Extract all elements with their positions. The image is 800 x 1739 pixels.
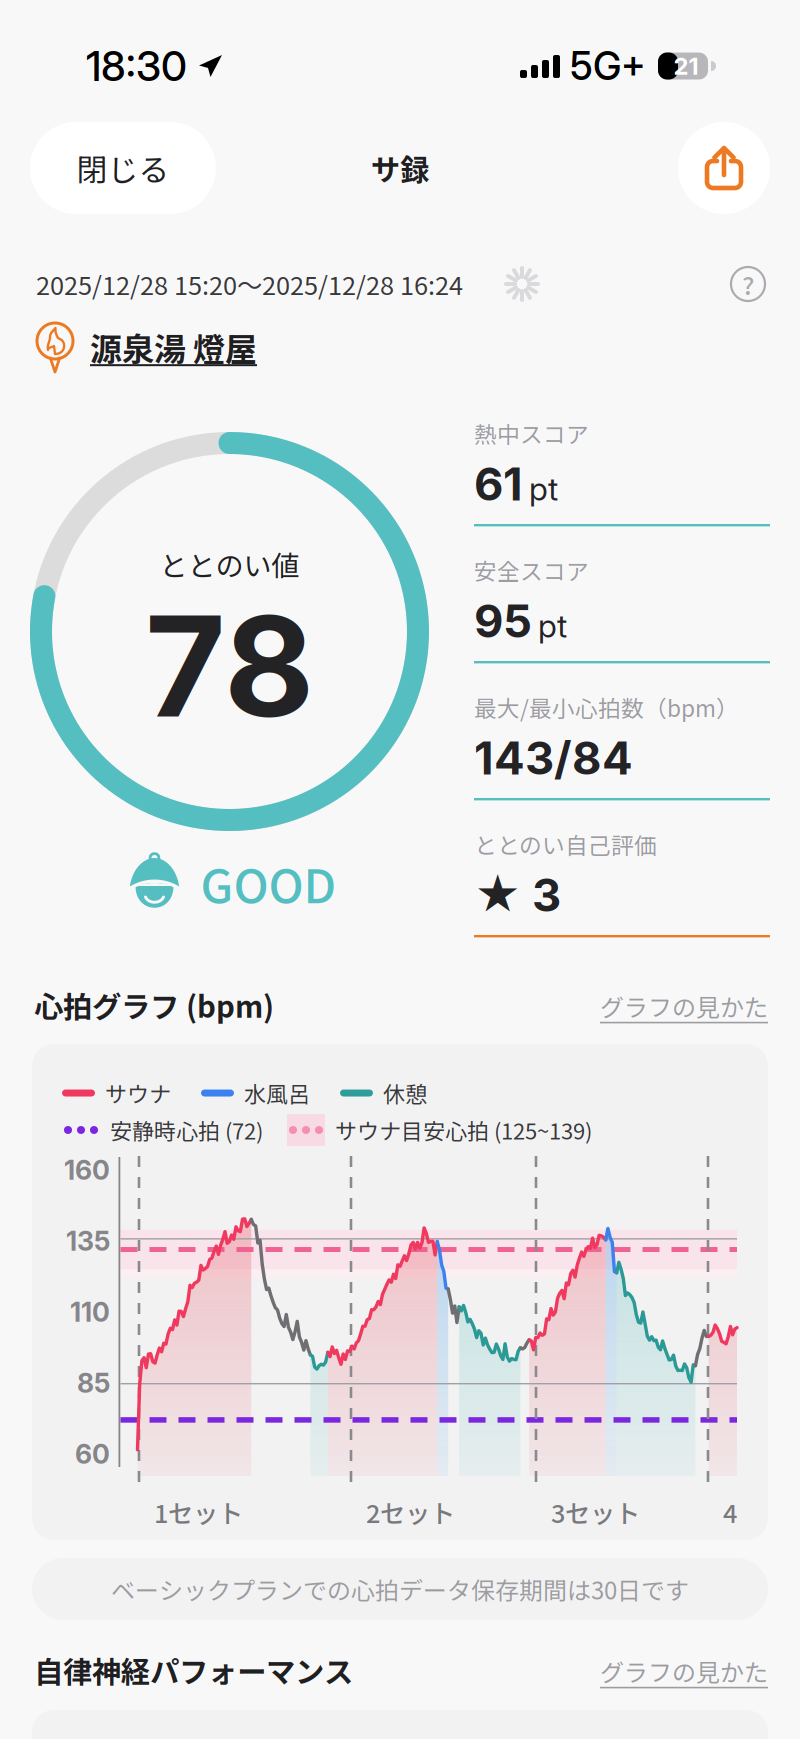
staticText: 自律神経パフォーマンス — [34, 1649, 353, 1691]
staticText: ? — [742, 266, 754, 302]
staticText: ととのい値 — [159, 544, 299, 584]
staticText: GOOD — [200, 849, 336, 917]
staticText: 143/84 — [474, 731, 633, 785]
staticText: 1セット — [154, 1494, 243, 1530]
button[interactable]: グラフの見かた — [568, 1653, 768, 1689]
staticText: 60 — [75, 1438, 110, 1470]
staticText: 4 — [723, 1494, 737, 1530]
staticText: 85 — [77, 1367, 110, 1399]
staticText: 源泉湯 燈屋 — [90, 324, 257, 370]
staticText: 安全スコア — [474, 554, 589, 586]
staticText: サ録 — [371, 147, 429, 189]
staticText: 5G+ — [570, 43, 646, 89]
staticText: 2025/12/28 15:20〜2025/12/28 16:24 — [36, 266, 463, 302]
staticText: pt — [529, 469, 558, 508]
staticText: 熱中スコア — [474, 417, 589, 449]
staticText: 休憩 — [383, 1077, 427, 1109]
staticText: 心拍グラフ (bpm) — [34, 984, 274, 1026]
staticText: サウナ目安心拍 (125~139) — [335, 1114, 592, 1146]
staticText: ★ 3 — [474, 868, 561, 922]
button[interactable]: グラフの見かた — [568, 988, 768, 1024]
staticText: サウナ — [105, 1077, 171, 1109]
staticText: 18:30 — [86, 41, 187, 91]
staticText: 95 — [474, 594, 532, 648]
staticText: 21 — [673, 51, 698, 80]
staticText: 3セット — [551, 1494, 640, 1530]
button[interactable]: ヘルプ — [722, 258, 774, 310]
staticText: 78 — [145, 582, 314, 750]
button[interactable]: 共有 — [678, 122, 770, 214]
staticText: 160 — [64, 1154, 110, 1186]
staticText: グラフの見かた — [600, 989, 768, 1023]
staticText: 61 — [474, 457, 523, 511]
staticText: 安静時心拍 (72) — [110, 1114, 263, 1146]
staticText: 閉じる — [76, 146, 169, 190]
staticText: pt — [538, 606, 567, 645]
staticText: 135 — [66, 1225, 110, 1257]
button[interactable]: 閉じる — [30, 122, 216, 214]
staticText: 110 — [70, 1296, 110, 1328]
staticText: ととのい自己評価 — [474, 828, 657, 860]
staticText: ベーシックプランでの心拍データ保存期間は30日です — [111, 1572, 689, 1606]
staticText: グラフの見かた — [600, 1654, 768, 1688]
staticText: 最大/最小心拍数（bpm） — [474, 691, 739, 723]
button[interactable]: 源泉湯 燈屋 — [34, 318, 394, 376]
staticText: 水風呂 — [244, 1077, 310, 1109]
staticText: 2セット — [366, 1494, 455, 1530]
